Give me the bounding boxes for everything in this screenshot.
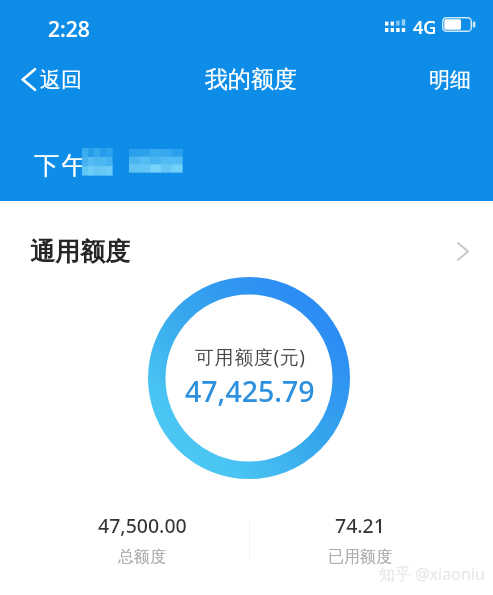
button[interactable]: 74.21 [260, 512, 460, 567]
other: Back [22, 68, 35, 91]
staticText: 已用额度 [328, 547, 392, 567]
staticText: 74.21 [335, 512, 385, 539]
staticText: 2:28 [48, 15, 90, 44]
button[interactable]: 通用额度 [0, 226, 493, 276]
other: Signal [385, 15, 406, 32]
staticText: 可用额度(元) [195, 344, 306, 370]
staticText: 下午 [34, 150, 90, 181]
other: More [457, 242, 469, 261]
staticText: 4G [413, 15, 437, 40]
staticText: 通用额度 [30, 236, 130, 267]
button[interactable]: 明细 [413, 57, 493, 102]
staticText: 47,500.00 [98, 512, 187, 539]
staticText: 返回 [40, 67, 82, 93]
button[interactable]: Back [0, 57, 96, 102]
staticText: 我的额度 [205, 65, 297, 94]
staticText: 明细 [429, 67, 471, 93]
staticText: 47,425.79 [185, 372, 315, 411]
button[interactable]: 47,500.00 [42, 512, 242, 567]
other: Battery [442, 17, 477, 32]
staticText: 总额度 [118, 547, 166, 567]
staticText: 知乎 @xiaoniu [379, 563, 485, 585]
